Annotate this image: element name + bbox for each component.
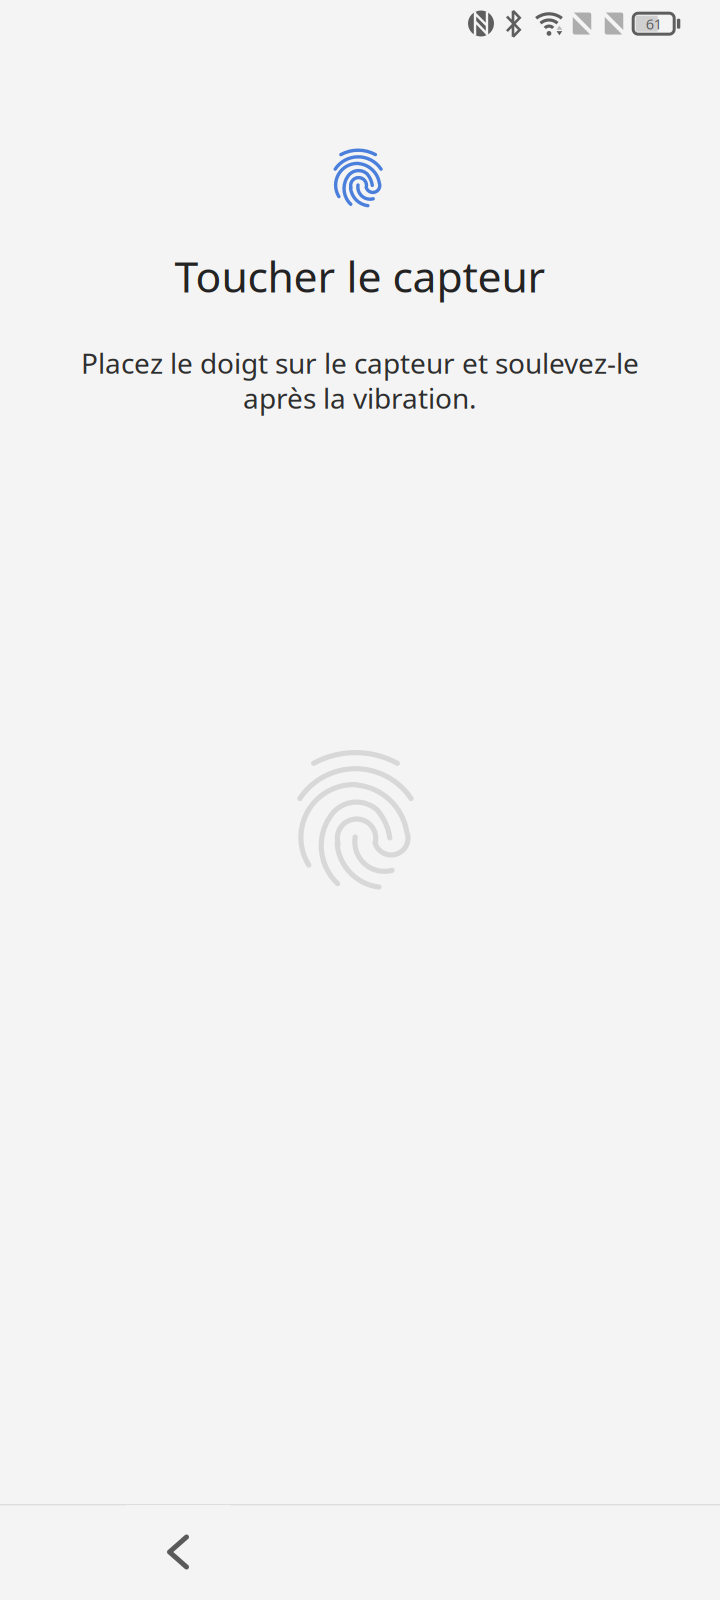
staticText: 61 (646, 14, 662, 33)
staticText: après la vibration. (243, 379, 477, 417)
staticText: Placez le doigt sur le capteur et soulev… (81, 344, 639, 382)
staticText: Toucher le capteur (174, 248, 545, 304)
button[interactable]: Back (126, 1505, 230, 1599)
